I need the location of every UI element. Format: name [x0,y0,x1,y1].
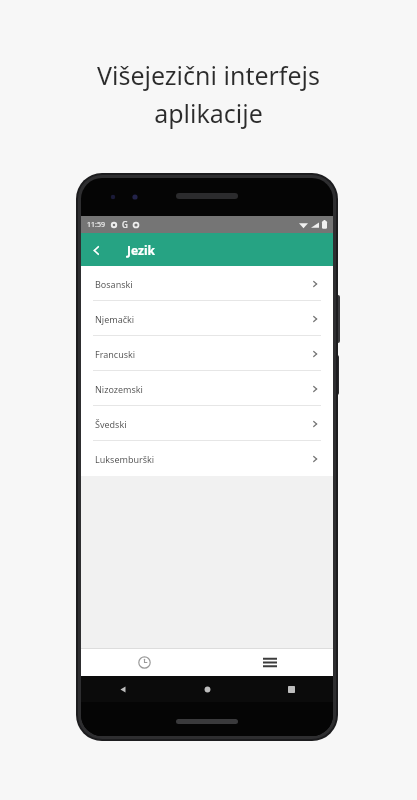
button[interactable]: Recent apps [249,676,333,702]
button[interactable]: Bosanski [81,266,333,301]
button[interactable]: Nizozemski [81,371,333,406]
staticText: Luksemburški [95,453,155,465]
staticText: G [122,219,128,230]
staticText: Švedski [95,418,127,430]
staticText: Njemački [95,313,135,325]
button[interactable]: Back [81,235,111,265]
button[interactable]: Luksemburški [81,441,333,476]
staticText: aplikacije [154,96,263,130]
button[interactable]: Back [81,676,165,702]
staticText: 11:59 [87,220,105,230]
button[interactable]: Francuski [81,336,333,371]
staticText: Višejezični interfejs [97,58,320,92]
button[interactable]: Njemački [81,301,333,336]
staticText: Francuski [95,348,136,360]
staticText: Jezik [127,242,155,258]
button[interactable]: Švedski [81,406,333,441]
staticText: Nizozemski [95,383,143,395]
button[interactable]: Home [165,676,249,702]
button[interactable]: History [81,649,207,676]
button[interactable]: Menu [207,649,333,676]
staticText: Bosanski [95,278,133,290]
